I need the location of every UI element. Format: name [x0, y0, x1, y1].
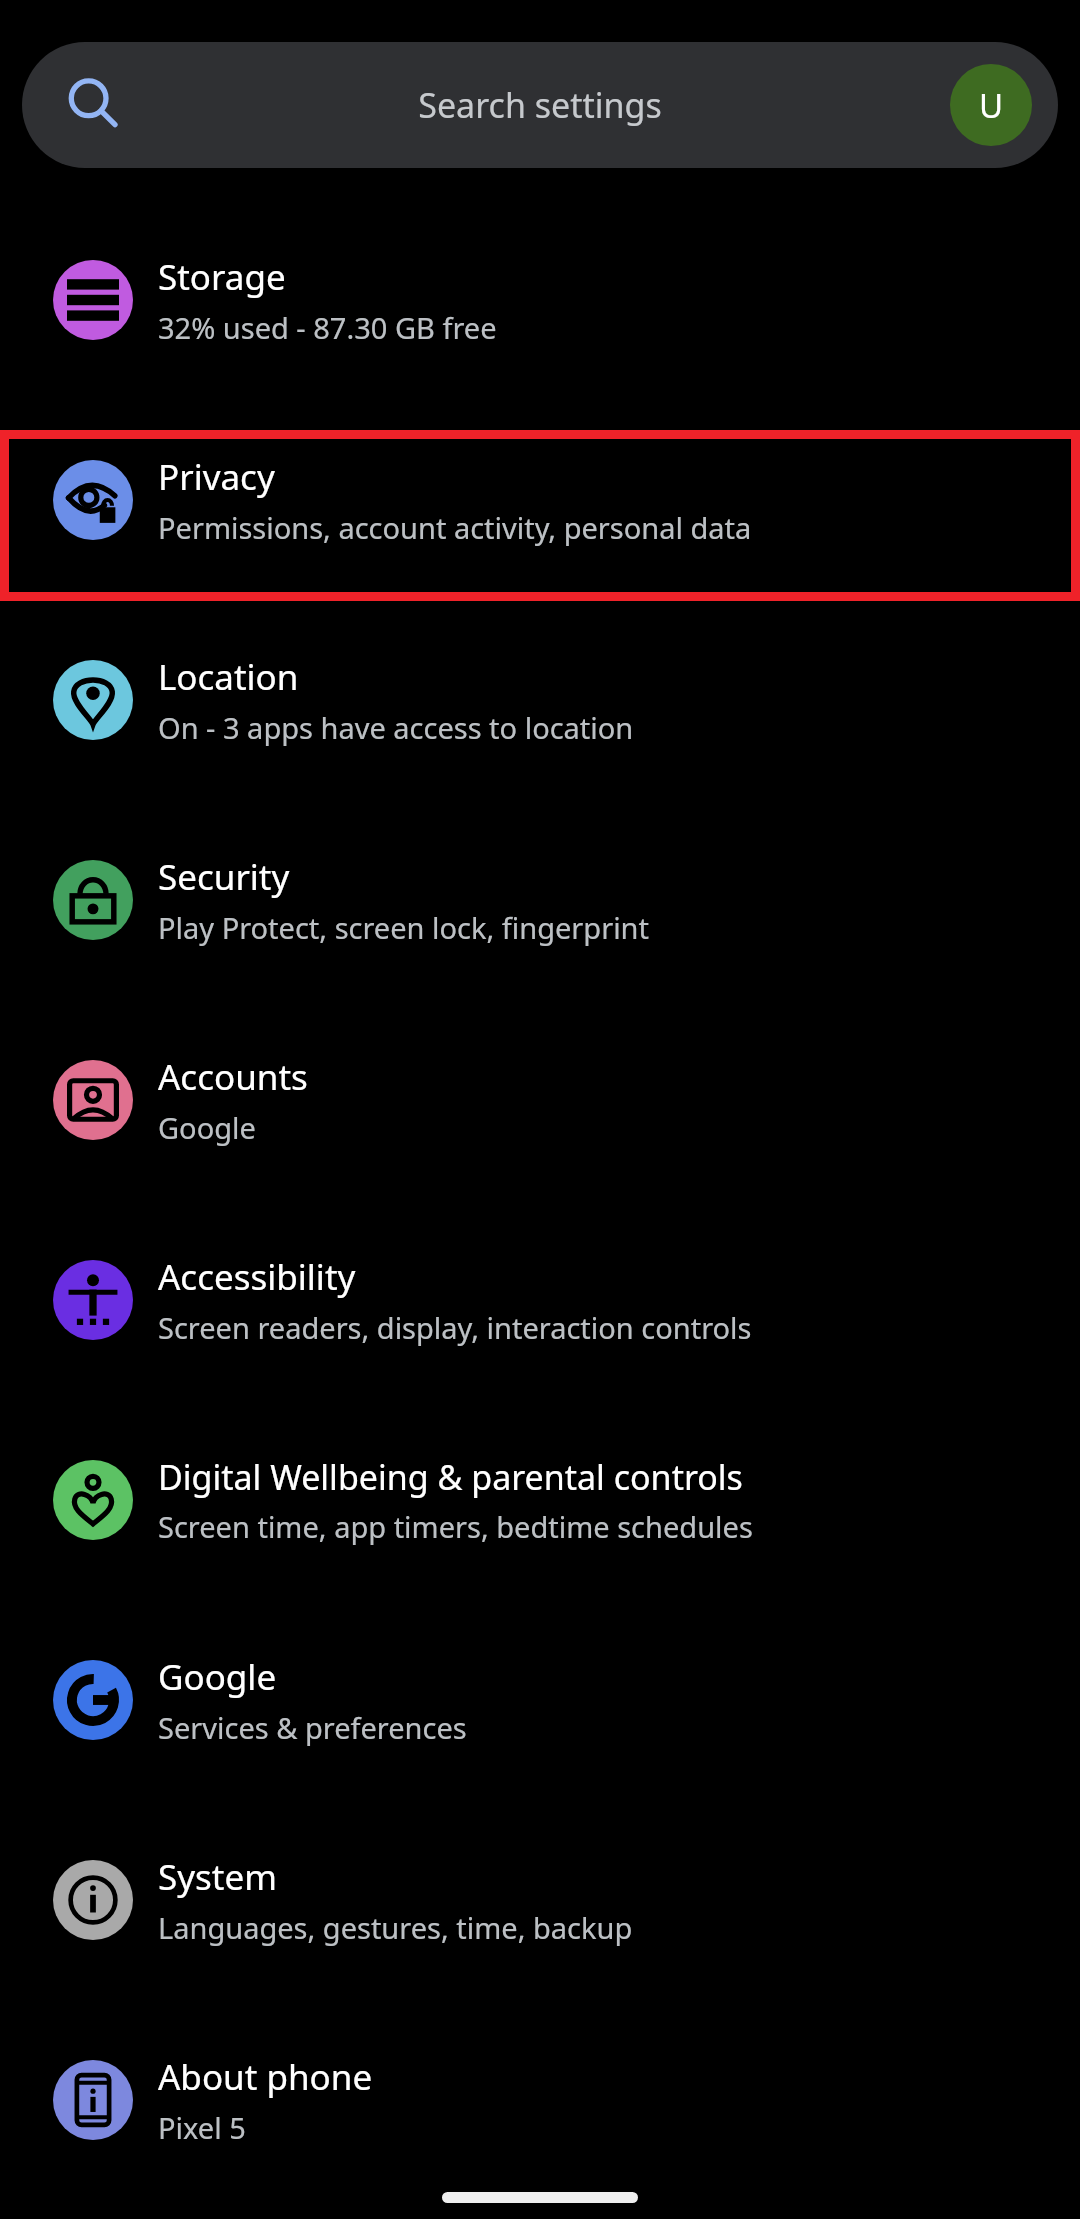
staticText: On - 3 apps have access to location	[158, 708, 634, 747]
staticText: Google	[158, 1653, 277, 1701]
button[interactable]: Account avatar	[950, 64, 1032, 146]
staticText: Location	[158, 653, 299, 701]
button[interactable]: Search	[22, 42, 1058, 168]
staticText: Privacy	[158, 453, 275, 501]
staticText: System	[158, 1853, 277, 1901]
staticText: Digital Wellbeing & parental controls	[158, 1454, 743, 1500]
staticText: Permissions, account activity, personal …	[158, 508, 752, 547]
staticText: Play Protect, screen lock, fingerprint	[158, 908, 649, 947]
button[interactable]: Privacy	[0, 400, 1080, 600]
button[interactable]: Accounts	[0, 1000, 1080, 1200]
staticText: Accounts	[158, 1053, 308, 1101]
staticText: Accessibility	[158, 1253, 356, 1301]
other: Search	[64, 77, 120, 133]
staticText: Security	[158, 853, 290, 901]
staticText: Search settings	[418, 82, 662, 128]
staticText: 32% used - 87.30 GB free	[158, 308, 497, 347]
button[interactable]: Security	[0, 800, 1080, 1000]
button[interactable]: About phone	[0, 2000, 1080, 2200]
staticText: Storage	[158, 253, 286, 301]
staticText: Services & preferences	[158, 1708, 467, 1747]
staticText: Screen readers, display, interaction con…	[158, 1308, 752, 1347]
staticText: U	[979, 83, 1004, 128]
staticText: About phone	[158, 2053, 373, 2101]
staticText: Google	[158, 1108, 256, 1147]
staticText: Pixel 5	[158, 2108, 246, 2147]
button[interactable]: Location	[0, 600, 1080, 800]
button[interactable]: Accessibility	[0, 1200, 1080, 1400]
staticText: Languages, gestures, time, backup	[158, 1908, 633, 1947]
button[interactable]: Digital Wellbeing & parental controls	[0, 1400, 1080, 1600]
button[interactable]: Google	[0, 1600, 1080, 1800]
staticText: Screen time, app timers, bedtime schedul…	[158, 1507, 753, 1546]
button[interactable]: Storage	[0, 200, 1080, 400]
button[interactable]: System	[0, 1800, 1080, 2000]
